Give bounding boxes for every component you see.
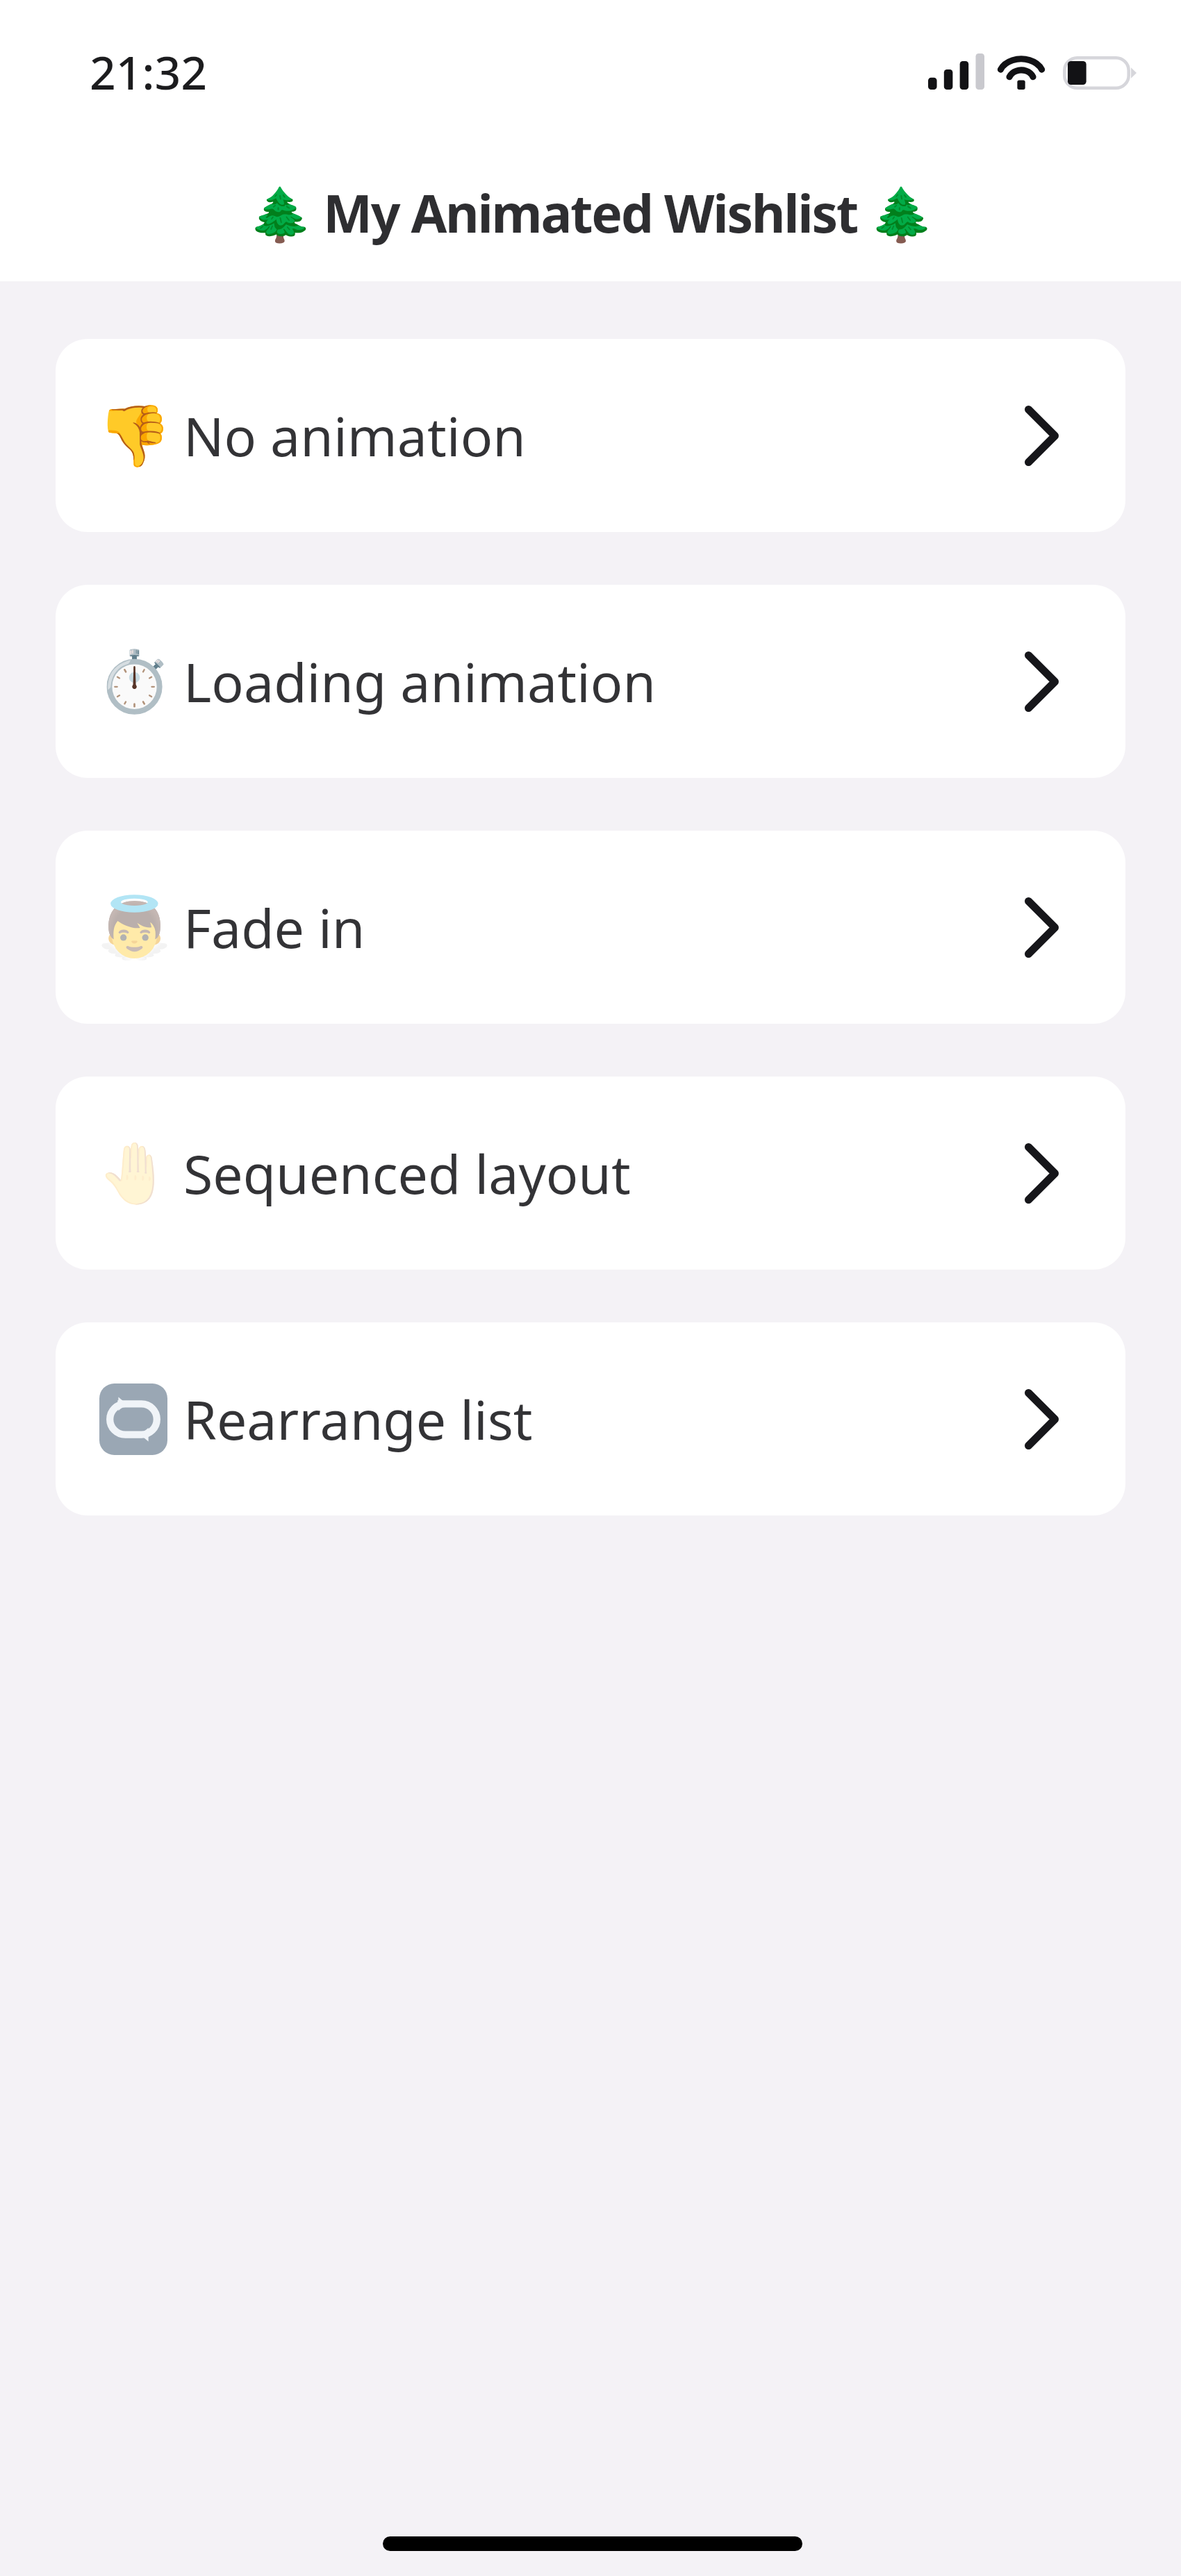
staticText: ⏱️ [97, 647, 172, 717]
staticText: Sequenced layout [183, 1137, 631, 1210]
staticText: 👎 [97, 401, 172, 471]
button[interactable]: Sequenced layout [56, 1077, 1125, 1270]
staticText: 🌲 My Animated Wishlist 🌲 [248, 177, 933, 248]
staticText: No animation [183, 399, 526, 472]
staticText: Fade in [183, 891, 365, 964]
staticText: 21:32 [90, 40, 207, 103]
staticText: Loading animation [183, 645, 656, 718]
button[interactable]: No animation [56, 339, 1125, 532]
button[interactable]: Rearrange list [56, 1322, 1125, 1515]
staticText: Rearrange list [183, 1383, 533, 1456]
button[interactable]: Fade in [56, 831, 1125, 1024]
button[interactable]: Loading animation [56, 585, 1125, 778]
staticText: 🤚 [97, 1138, 172, 1208]
staticText: 👼 [97, 892, 172, 963]
